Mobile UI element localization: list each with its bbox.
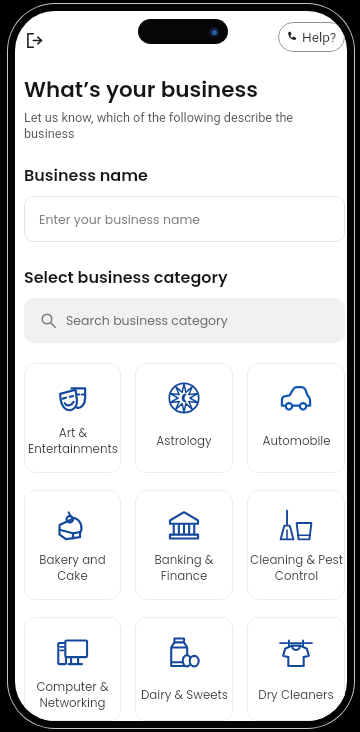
staticText: Bakery and Cake	[39, 552, 106, 584]
staticText: Banking & Finance	[154, 552, 214, 584]
button[interactable]: Automobile	[247, 363, 345, 473]
button[interactable]: Enter your business name	[24, 196, 345, 242]
staticText: Select business category	[24, 266, 228, 288]
staticText: Business name	[24, 164, 148, 186]
staticText: Dry Cleaners	[258, 687, 334, 704]
button[interactable]: Astrology	[135, 363, 233, 473]
staticText: Dairy & Sweets	[141, 687, 228, 704]
staticText: Help?	[302, 29, 337, 45]
staticText: Astrology	[156, 433, 212, 450]
staticText: Automobile	[262, 433, 331, 450]
staticText: What’s your business	[24, 74, 259, 104]
staticText: Let us know, which of the following desc…	[24, 110, 306, 141]
button[interactable]: Dry Cleaners	[247, 617, 345, 721]
button[interactable]: Help?	[278, 22, 345, 52]
button[interactable]: Cleaning & Pest Control	[247, 490, 345, 600]
button[interactable]: Computer & Networking	[24, 617, 121, 721]
staticText: Enter your business name	[39, 211, 201, 228]
button[interactable]: Dairy & Sweets	[135, 617, 233, 721]
button[interactable]: Log out	[26, 32, 43, 51]
button[interactable]: Search business category	[24, 298, 345, 343]
staticText: Art & Entertainments	[28, 425, 118, 457]
staticText: Computer & Networking	[36, 679, 109, 711]
staticText: Search business category	[66, 312, 228, 329]
staticText: Cleaning & Pest Control	[250, 552, 343, 584]
button[interactable]: Art & Entertainments	[24, 363, 121, 473]
button[interactable]: Bakery and Cake	[24, 490, 121, 600]
button[interactable]: Banking & Finance	[135, 490, 233, 600]
